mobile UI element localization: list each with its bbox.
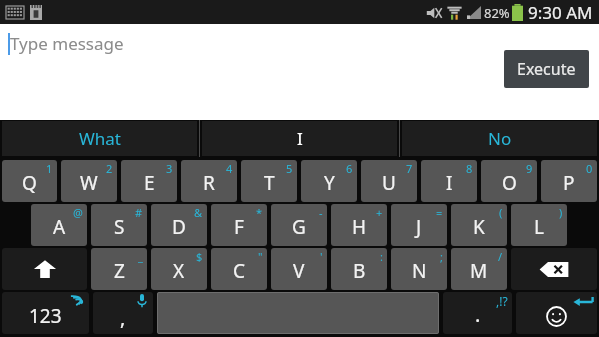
staticText: ( <box>499 205 503 220</box>
staticText: . <box>475 301 481 328</box>
button[interactable]: R <box>181 160 237 202</box>
staticText: L <box>534 214 544 240</box>
button[interactable]: P <box>541 160 597 202</box>
button[interactable]: Shift <box>2 248 87 290</box>
button[interactable]: W <box>61 160 117 202</box>
button[interactable]: Execute <box>504 50 589 88</box>
button[interactable]: U <box>361 160 417 202</box>
button[interactable]: Space <box>157 292 439 334</box>
button[interactable]: Q <box>2 160 57 202</box>
staticText: G <box>292 214 306 240</box>
staticText: No <box>488 127 512 150</box>
staticText: R <box>203 170 215 196</box>
button[interactable]: No <box>402 121 597 156</box>
button[interactable]: Enter <box>516 292 597 334</box>
staticText: / <box>498 249 503 264</box>
staticText: 6 <box>346 161 353 176</box>
staticText: U <box>382 170 396 196</box>
staticText: 8 <box>466 161 473 176</box>
staticText: + <box>376 205 383 220</box>
button[interactable]: . <box>443 292 512 334</box>
button[interactable]: L <box>511 204 567 246</box>
button[interactable]: Backspace <box>511 248 597 290</box>
staticText: Type message <box>10 32 124 55</box>
button[interactable]: C <box>211 248 267 290</box>
button[interactable]: D <box>151 204 207 246</box>
button[interactable]: H <box>331 204 387 246</box>
staticText: A <box>53 214 66 240</box>
staticText: X <box>173 258 185 284</box>
staticText: Q <box>22 170 37 196</box>
staticText: 4 <box>226 161 233 176</box>
staticText: - <box>319 205 323 220</box>
staticText: E <box>144 170 155 196</box>
staticText: $ <box>196 249 203 264</box>
staticText: P <box>563 170 575 196</box>
staticText: 9 <box>526 161 533 176</box>
staticText: 1 <box>46 161 53 176</box>
button[interactable]: K <box>451 204 507 246</box>
staticText: , <box>120 304 126 331</box>
staticText: # <box>135 205 143 220</box>
staticText: H <box>352 214 367 240</box>
button[interactable]: T <box>241 160 297 202</box>
staticText: Y <box>324 170 335 196</box>
button[interactable]: I <box>202 121 397 156</box>
staticText: S <box>114 214 125 240</box>
staticText: O <box>502 170 517 196</box>
staticText: 9:30 AM <box>528 1 593 24</box>
staticText: " <box>258 249 263 264</box>
button[interactable]: V <box>271 248 327 290</box>
staticText: 0 <box>586 161 593 176</box>
staticText: I <box>297 127 303 150</box>
staticText: 5 <box>286 161 293 176</box>
button[interactable]: S <box>91 204 147 246</box>
staticText: C <box>233 258 246 284</box>
staticText: 2 <box>106 161 113 176</box>
staticText: What <box>79 127 121 150</box>
staticText: W <box>80 170 98 196</box>
button[interactable]: Z <box>91 248 147 290</box>
button[interactable]: , <box>93 292 153 334</box>
button[interactable]: F <box>211 204 267 246</box>
staticText: B <box>353 258 366 284</box>
staticText: 3 <box>166 161 173 176</box>
button[interactable]: E <box>121 160 177 202</box>
staticText: T <box>264 170 275 196</box>
staticText: J <box>416 214 422 240</box>
staticText: M <box>470 258 488 284</box>
staticText: Execute <box>517 58 576 80</box>
button[interactable]: M <box>451 248 507 290</box>
button[interactable]: O <box>481 160 537 202</box>
staticText: ; <box>440 249 443 264</box>
staticText: Z <box>114 258 125 284</box>
staticText: K <box>473 214 485 240</box>
staticText: 7 <box>406 161 413 176</box>
staticText: 123 <box>29 303 62 329</box>
staticText: @ <box>73 205 83 220</box>
button[interactable]: I <box>421 160 477 202</box>
button[interactable]: Y <box>301 160 357 202</box>
staticText: I <box>446 170 453 196</box>
staticText: : <box>380 249 383 264</box>
staticText: ,!? <box>496 293 508 309</box>
staticText: D <box>172 214 186 240</box>
staticText: * <box>256 205 263 220</box>
button[interactable]: 123 <box>2 292 89 334</box>
button[interactable]: B <box>331 248 387 290</box>
staticText: ) <box>559 205 563 220</box>
staticText: 82% <box>484 4 510 22</box>
staticText: N <box>412 258 427 284</box>
staticText: & <box>194 205 203 220</box>
button[interactable]: What <box>2 121 197 156</box>
staticText: _ <box>138 249 143 264</box>
button[interactable]: N <box>391 248 447 290</box>
staticText: = <box>436 205 443 220</box>
button[interactable]: X <box>151 248 207 290</box>
staticText: F <box>234 214 244 240</box>
button[interactable]: G <box>271 204 327 246</box>
button[interactable]: A <box>31 204 87 246</box>
staticText: V <box>293 258 305 284</box>
button[interactable]: J <box>391 204 447 246</box>
staticText: ' <box>320 249 323 264</box>
